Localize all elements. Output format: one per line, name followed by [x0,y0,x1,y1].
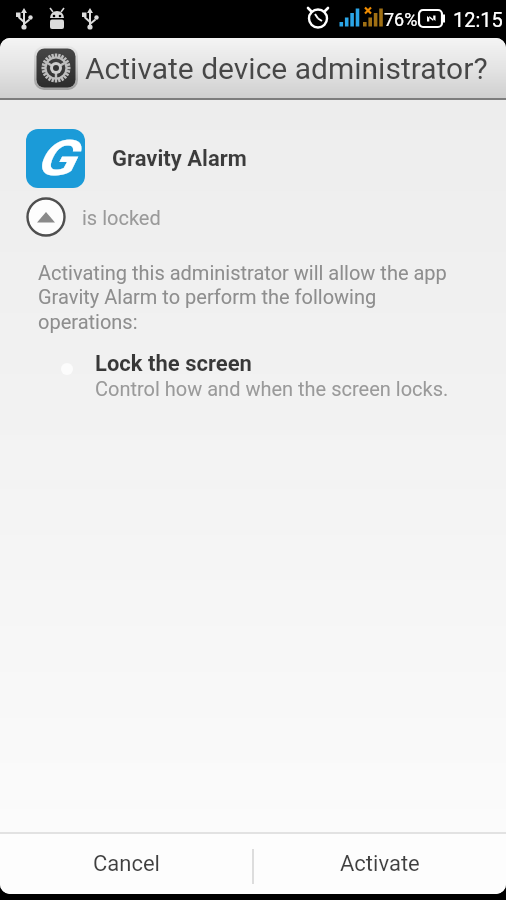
staticText: Lock the screen [95,351,252,377]
staticText: Control how and when the screen locks. [95,377,449,400]
staticText: G [36,130,76,187]
staticText: Activate [340,851,420,877]
staticText: Activating this administrator will allow… [38,261,447,334]
staticText: Activate device administrator? [85,51,488,86]
button[interactable] [26,197,66,237]
staticText: 76% [384,9,418,30]
staticText: is locked [82,206,161,229]
button[interactable]: Activate [254,834,506,894]
staticText: Cancel [93,851,160,877]
button[interactable]: Cancel [0,834,252,894]
staticText: Gravity Alarm [112,146,247,172]
staticText: 12:15 [453,8,503,31]
